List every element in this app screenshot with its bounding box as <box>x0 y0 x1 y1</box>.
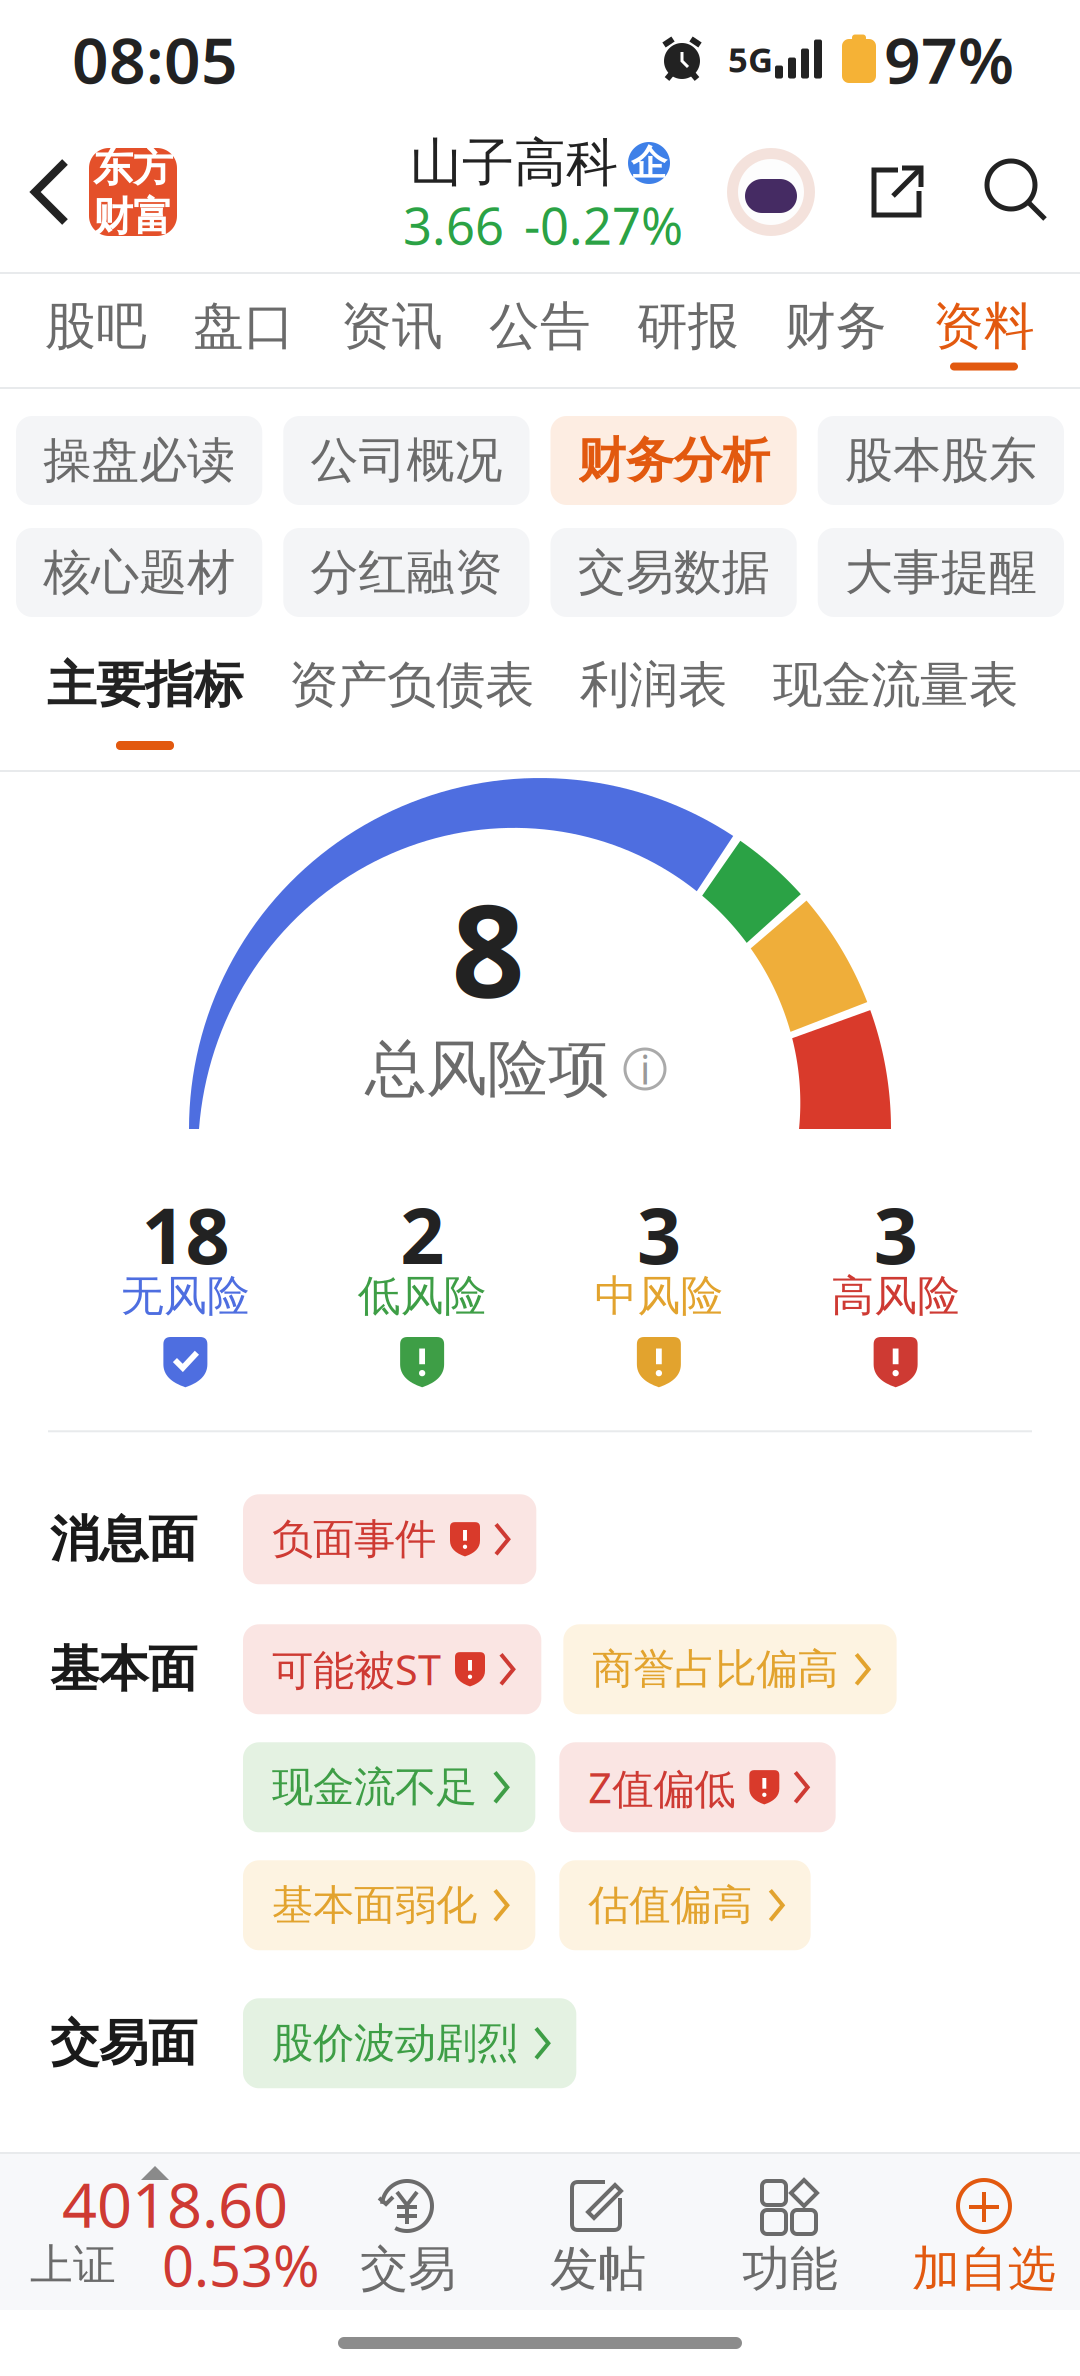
staticText: 高风险 <box>831 1270 960 1322</box>
button[interactable]: 资产负债表 <box>289 647 534 750</box>
staticText: 资讯 <box>341 295 443 358</box>
button[interactable]: Z值偏低 <box>559 1742 836 1832</box>
button[interactable]: 估值偏高 <box>559 1860 811 1950</box>
button[interactable]: 分红融资 <box>283 528 529 617</box>
staticText: 3.66 <box>403 191 504 259</box>
button[interactable]: Back <box>2 136 98 248</box>
staticText: 08:05 <box>72 16 238 101</box>
staticText: 可能被ST <box>272 1642 441 1697</box>
staticText: 操盘必读 <box>43 431 235 490</box>
button[interactable]: 股吧 <box>22 274 170 387</box>
staticText: 核心题材 <box>43 543 235 602</box>
staticText: 3 <box>874 1183 918 1285</box>
button[interactable]: 财务分析 <box>550 416 797 505</box>
button[interactable]: 股本股东 <box>818 416 1064 505</box>
button[interactable]: 负面事件 <box>243 1494 536 1584</box>
staticText: 交易面 <box>50 2013 197 2074</box>
staticText: 加自选 <box>912 2239 1056 2298</box>
staticText: 资产负债表 <box>289 655 534 715</box>
staticText: i <box>640 1042 650 1095</box>
button[interactable]: 大事提醒 <box>818 528 1064 617</box>
button[interactable]: 现金流不足 <box>243 1742 535 1832</box>
button[interactable]: 财务 <box>762 274 910 387</box>
button[interactable]: 盘口 <box>170 274 318 387</box>
staticText: 估值偏高 <box>588 1880 752 1931</box>
staticText: 利润表 <box>580 655 727 715</box>
staticText: 功能 <box>742 2239 838 2298</box>
staticText: 5G <box>728 36 773 82</box>
button[interactable]: 商誉占比偏高 <box>563 1624 897 1714</box>
staticText: 大事提醒 <box>845 543 1037 602</box>
staticText: 股价波动剧烈 <box>272 2018 518 2069</box>
staticText: 低风险 <box>358 1270 487 1322</box>
staticText: 8 <box>451 863 524 1033</box>
staticText: 0.53% <box>162 2228 320 2302</box>
staticText: 财务分析 <box>578 431 770 490</box>
button[interactable]: Search <box>966 140 1066 244</box>
staticText: 负面事件 <box>272 1514 436 1565</box>
button[interactable]: 可能被ST <box>243 1624 541 1714</box>
staticText: 山子高科 <box>410 131 618 195</box>
staticText: 2 <box>400 1183 444 1285</box>
button[interactable]: 交易 <box>318 2159 498 2309</box>
button[interactable]: 交易数据 <box>550 528 797 617</box>
staticText: 盘口 <box>193 295 295 358</box>
button[interactable]: 主要指标 <box>47 647 243 750</box>
staticText: 研报 <box>637 295 739 358</box>
staticText: 基本面 <box>50 1639 197 1700</box>
staticText: 股本股东 <box>845 431 1037 490</box>
button[interactable]: 资讯 <box>318 274 466 387</box>
button[interactable]: 研报 <box>614 274 762 387</box>
button[interactable]: 公告 <box>466 274 614 387</box>
staticText: 交易数据 <box>578 543 770 602</box>
button[interactable]: 股价波动剧烈 <box>243 1998 576 2088</box>
staticText: 交易 <box>360 2239 456 2298</box>
button[interactable]: 现金流量表 <box>773 647 1018 750</box>
button[interactable]: 基本面弱化 <box>243 1860 535 1950</box>
staticText: 分红融资 <box>310 543 502 602</box>
staticText: 消息面 <box>50 1509 197 1570</box>
staticText: 东方 <box>93 143 173 192</box>
staticText: -0.27% <box>524 191 683 259</box>
staticText: 财务 <box>785 295 887 358</box>
staticText: 公告 <box>489 295 591 358</box>
staticText: 基本面弱化 <box>272 1880 477 1931</box>
staticText: 资料 <box>933 295 1035 358</box>
button[interactable]: 核心题材 <box>16 528 262 617</box>
staticText: 18 <box>141 1183 229 1285</box>
staticText: 97% <box>884 16 1014 101</box>
staticText: 上证 <box>30 2239 116 2291</box>
button[interactable]: Share <box>847 140 947 244</box>
button[interactable]: 操盘必读 <box>16 416 262 505</box>
staticText: 公司概况 <box>310 431 502 490</box>
staticText: 现金流量表 <box>773 655 1018 715</box>
button[interactable]: 发帖 <box>508 2159 688 2309</box>
button[interactable]: 功能 <box>700 2159 880 2309</box>
staticText: 3 <box>637 1183 681 1285</box>
staticText: 企 <box>631 141 667 185</box>
staticText: 股吧 <box>45 295 147 358</box>
staticText: 无风险 <box>121 1270 250 1322</box>
button[interactable]: 加自选 <box>894 2159 1074 2309</box>
button[interactable]: 利润表 <box>580 647 727 750</box>
staticText: 现金流不足 <box>272 1762 477 1813</box>
button[interactable]: Shanghai Composite Index 4018.60 <box>25 2154 325 2310</box>
staticText: 财富 <box>93 192 173 241</box>
staticText: 发帖 <box>550 2239 646 2298</box>
button[interactable]: 公司概况 <box>283 416 529 505</box>
button[interactable]: East Money <box>89 148 177 236</box>
staticText: 商誉占比偏高 <box>592 1644 838 1695</box>
staticText: 主要指标 <box>47 655 243 715</box>
staticText: Z值偏低 <box>588 1760 735 1815</box>
staticText: 4018.60 <box>62 2163 288 2245</box>
staticText: 中风险 <box>594 1270 723 1322</box>
button[interactable]: 资料 <box>910 274 1058 387</box>
staticText: 总风险项 <box>365 1031 609 1107</box>
